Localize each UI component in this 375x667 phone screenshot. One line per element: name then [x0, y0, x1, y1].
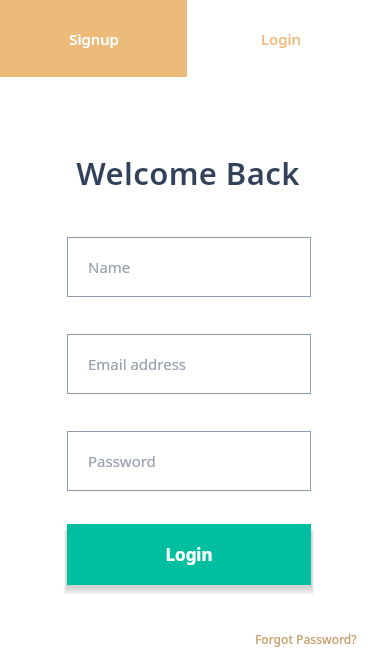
- staticText: Email address: [88, 354, 187, 374]
- staticText: Password: [88, 451, 156, 471]
- staticText: Signup: [69, 29, 119, 49]
- staticText: Login: [261, 29, 301, 49]
- staticText: Name: [88, 257, 131, 277]
- button[interactable]: Password: [67, 431, 311, 491]
- staticText: Forgot Password?: [255, 631, 357, 647]
- button[interactable]: Signup: [0, 0, 187, 77]
- button[interactable]: Login: [67, 524, 311, 585]
- button[interactable]: Login: [187, 0, 375, 77]
- button[interactable]: Name: [67, 237, 311, 297]
- staticText: Login: [165, 543, 213, 566]
- button[interactable]: Forgot Password?: [251, 629, 361, 649]
- button[interactable]: Email address: [67, 334, 311, 394]
- staticText: Welcome Back: [76, 152, 300, 194]
